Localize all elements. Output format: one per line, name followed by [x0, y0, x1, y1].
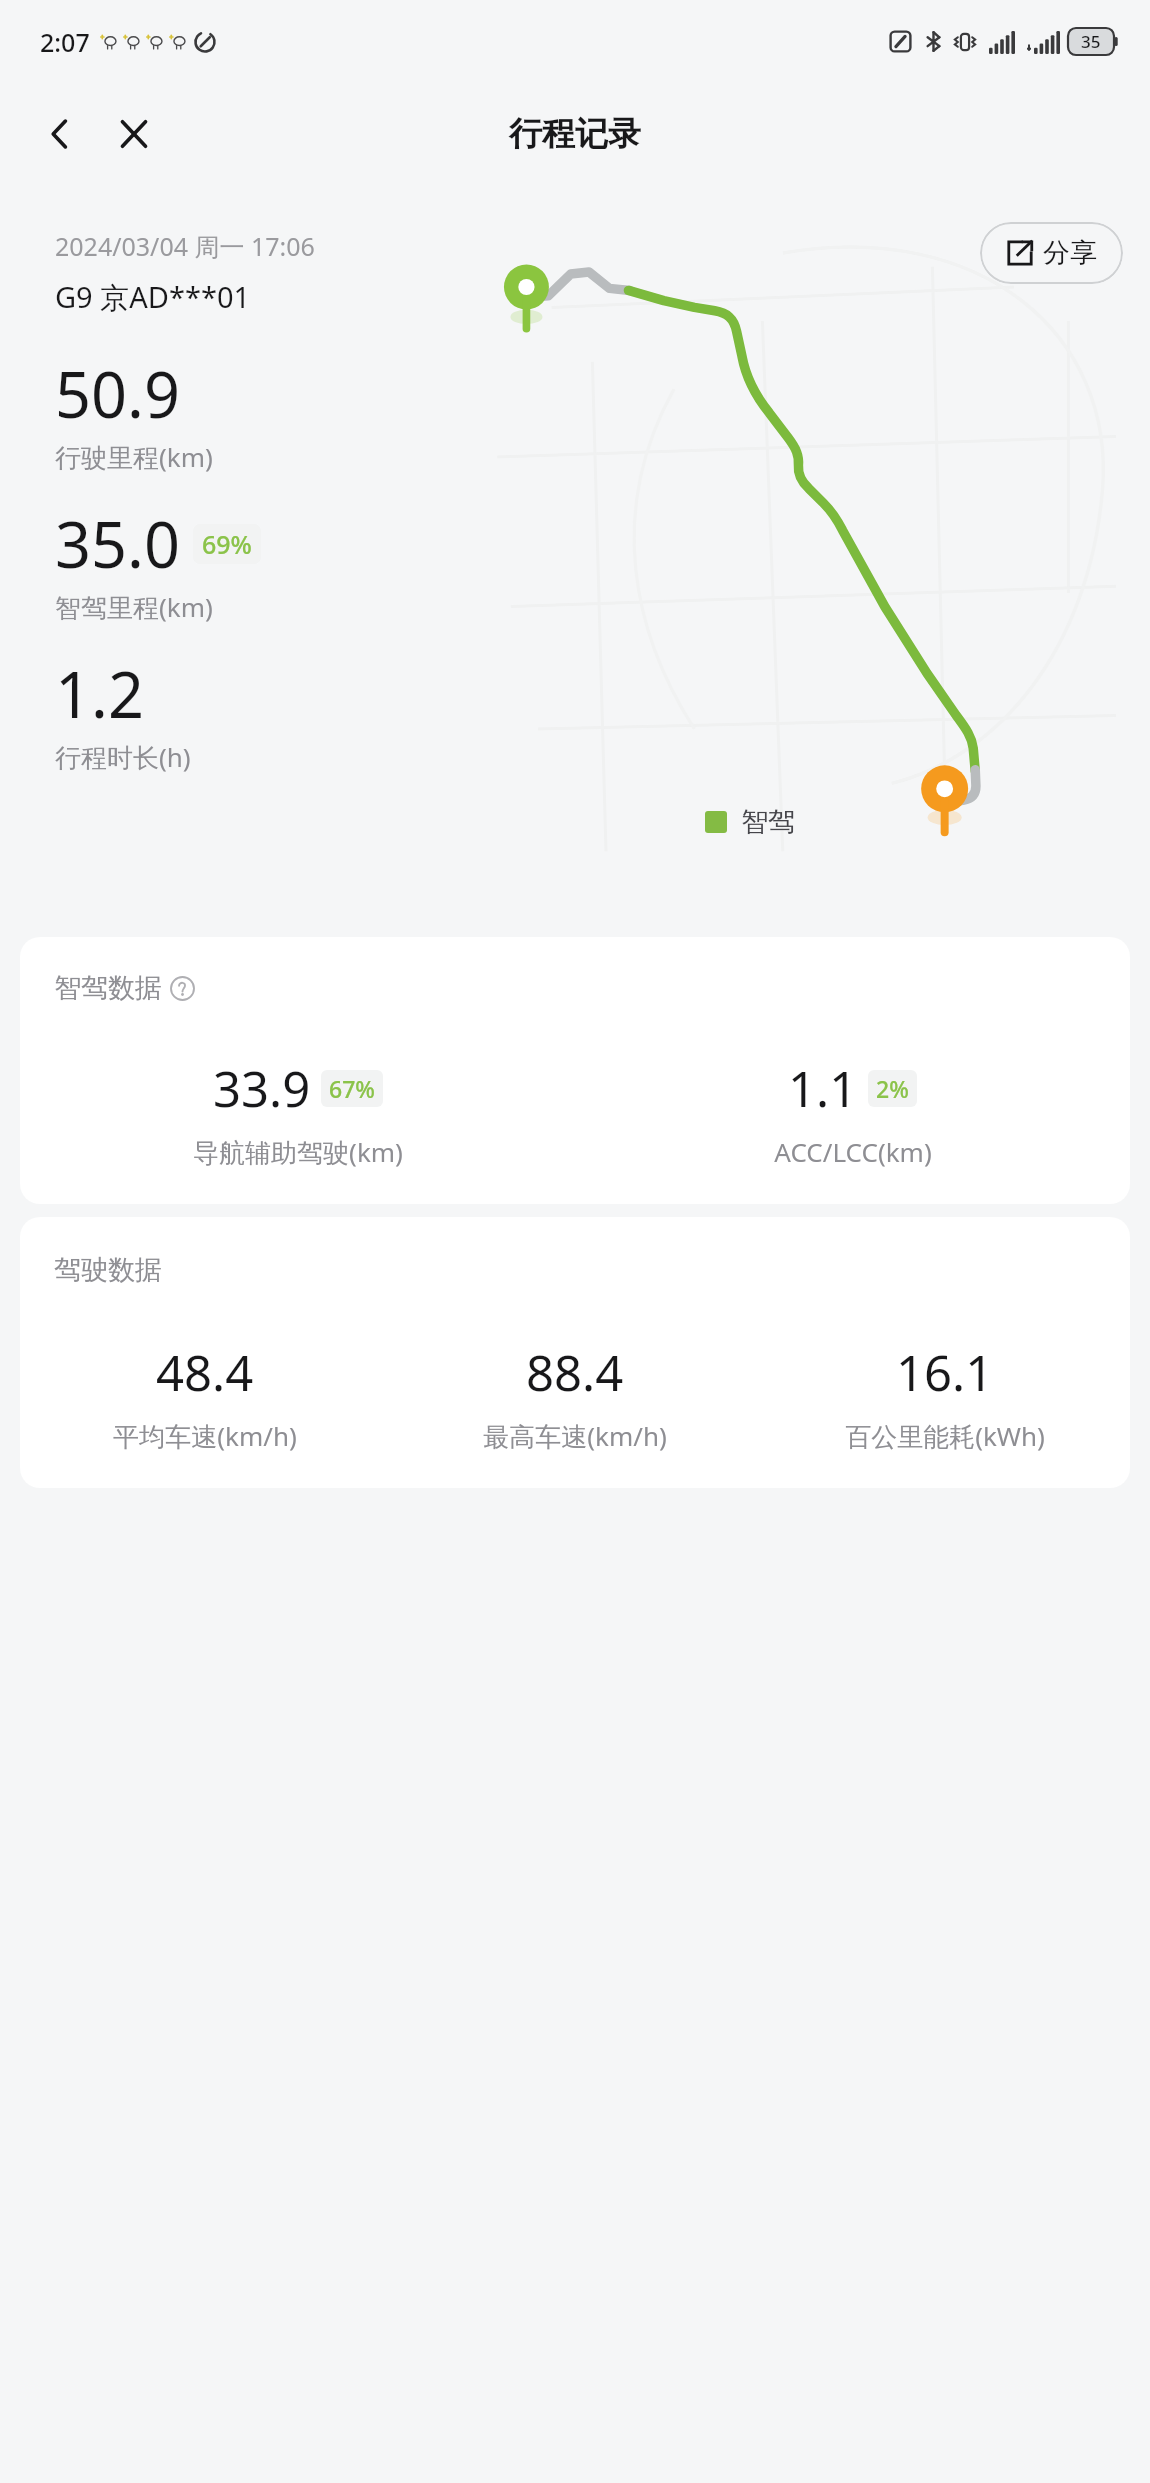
staticText: 2:07 — [40, 25, 90, 59]
staticText: 69% — [202, 527, 252, 561]
staticText: 16.1 — [896, 1339, 994, 1406]
button[interactable]: Back — [28, 102, 92, 166]
staticText: 百公里能耗(kWh) — [845, 1418, 1045, 1454]
staticText: 1.2 — [55, 651, 144, 737]
staticText: 行程时长(h) — [55, 739, 191, 775]
staticText: 智驾数据 — [54, 971, 162, 1005]
staticText: 48.4 — [156, 1339, 254, 1406]
staticText: ACC/LCC(km) — [774, 1134, 932, 1169]
staticText: 行程记录 — [509, 113, 641, 155]
staticText: 50.9 — [55, 351, 180, 437]
staticText: 智驾里程(km) — [55, 589, 213, 625]
staticText: 33.9 — [213, 1055, 311, 1122]
staticText: 平均车速(km/h) — [113, 1418, 297, 1454]
button[interactable]: 智驾数据 — [20, 937, 1130, 1204]
staticText: 行驶里程(km) — [55, 439, 213, 475]
staticText: 2% — [876, 1073, 909, 1104]
button[interactable]: 分享 — [980, 222, 1123, 284]
staticText: G9 京AD***01 — [55, 277, 251, 317]
staticText: 导航辅助驾驶(km) — [193, 1134, 403, 1170]
button[interactable]: Help — [167, 973, 197, 1003]
staticText: 88.4 — [526, 1339, 624, 1406]
button[interactable]: 驾驶数据 — [20, 1217, 1130, 1488]
button[interactable]: Close — [102, 102, 166, 166]
staticText: 智驾 — [741, 805, 795, 839]
staticText: 分享 — [1043, 236, 1097, 270]
staticText: 2024/03/04 周一 17:06 — [55, 229, 315, 263]
staticText: 驾驶数据 — [54, 1253, 162, 1287]
staticText: 35.0 — [55, 501, 180, 587]
staticText: 最高车速(km/h) — [483, 1418, 667, 1454]
staticText: 1.1 — [788, 1055, 858, 1122]
staticText: 67% — [329, 1073, 375, 1104]
staticText: 35 — [1081, 30, 1101, 53]
